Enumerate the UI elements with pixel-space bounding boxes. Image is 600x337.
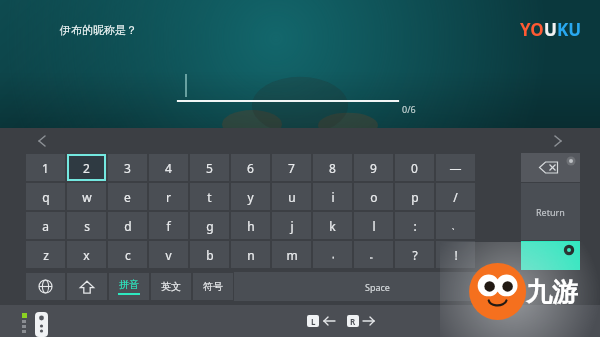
button[interactable]: z: [26, 241, 65, 268]
button[interactable]: 0: [395, 154, 434, 181]
staticText: r: [166, 189, 171, 205]
staticText: i: [331, 189, 335, 205]
staticText: p: [411, 189, 419, 205]
staticText: s: [84, 218, 90, 234]
button[interactable]: Confirm: [521, 241, 580, 270]
button[interactable]: e: [108, 183, 147, 210]
button[interactable]: a: [26, 212, 65, 239]
button[interactable]: Backspace: [521, 153, 580, 182]
button[interactable]: 英文: [151, 273, 191, 300]
staticText: t: [207, 189, 212, 205]
staticText: g: [206, 218, 214, 234]
staticText: o: [370, 189, 378, 205]
staticText: —: [449, 160, 462, 176]
staticText: 符号: [203, 280, 223, 293]
button[interactable]: 符号: [193, 273, 233, 300]
button[interactable]: 6: [231, 154, 270, 181]
button[interactable]: Next page: [548, 131, 568, 151]
staticText: KU: [557, 18, 582, 41]
button[interactable]: :: [395, 212, 434, 239]
staticText: y: [247, 189, 254, 205]
button[interactable]: o: [354, 183, 393, 210]
staticText: 5: [206, 160, 213, 176]
staticText: L: [311, 316, 316, 327]
button[interactable]: Space: [234, 272, 520, 301]
button[interactable]: !: [436, 241, 475, 268]
staticText: 0/6: [402, 103, 416, 115]
staticText: e: [124, 189, 131, 205]
button[interactable]: n: [231, 241, 270, 268]
button[interactable]: 。: [354, 241, 393, 268]
button[interactable]: x: [67, 241, 106, 268]
staticText: ，: [328, 248, 338, 261]
staticText: 6: [247, 160, 254, 176]
button[interactable]: 2: [67, 154, 106, 181]
staticText: 英文: [161, 280, 181, 293]
staticText: :: [413, 218, 417, 234]
staticText: 2: [83, 160, 90, 176]
button[interactable]: 拼音: [109, 273, 149, 300]
staticText: f: [166, 218, 171, 234]
staticText: 3: [124, 160, 131, 176]
button[interactable]: c: [108, 241, 147, 268]
button[interactable]: v: [149, 241, 188, 268]
button[interactable]: 、: [436, 212, 475, 239]
staticText: q: [42, 189, 50, 205]
button[interactable]: Key: [26, 273, 65, 300]
button[interactable]: 9: [354, 154, 393, 181]
button[interactable]: m: [272, 241, 311, 268]
staticText: /: [453, 189, 458, 205]
button[interactable]: b: [190, 241, 229, 268]
button[interactable]: r: [149, 183, 188, 210]
button[interactable]: u: [272, 183, 311, 210]
staticText: n: [247, 247, 255, 263]
button[interactable]: ，: [313, 241, 352, 268]
staticText: 伊布的昵称是？: [60, 23, 137, 37]
button[interactable]: p: [395, 183, 434, 210]
button[interactable]: g: [190, 212, 229, 239]
button[interactable]: j: [272, 212, 311, 239]
button[interactable]: —: [436, 154, 475, 181]
staticText: 。: [369, 248, 379, 261]
staticText: x: [83, 247, 90, 263]
button[interactable]: w: [67, 183, 106, 210]
staticText: 拼音: [119, 278, 139, 291]
staticText: h: [247, 218, 255, 234]
button[interactable]: i: [313, 183, 352, 210]
staticText: 9: [370, 160, 377, 176]
staticText: 九游: [526, 276, 578, 309]
staticText: U: [544, 18, 557, 41]
staticText: c: [125, 247, 131, 263]
staticText: !: [454, 247, 458, 263]
staticText: Return: [536, 206, 565, 218]
button[interactable]: y: [231, 183, 270, 210]
button[interactable]: 5: [190, 154, 229, 181]
staticText: w: [82, 189, 92, 205]
button[interactable]: 8: [313, 154, 352, 181]
button[interactable]: /: [436, 183, 475, 210]
button[interactable]: Key: [67, 273, 107, 300]
button[interactable]: ?: [395, 241, 434, 268]
button[interactable]: Return: [521, 183, 580, 240]
button[interactable]: d: [108, 212, 147, 239]
button[interactable]: s: [67, 212, 106, 239]
button[interactable]: 4: [149, 154, 188, 181]
staticText: ?: [412, 247, 418, 263]
button[interactable]: 7: [272, 154, 311, 181]
staticText: j: [290, 218, 294, 234]
button[interactable]: l: [354, 212, 393, 239]
button[interactable]: k: [313, 212, 352, 239]
button[interactable]: Previous page: [32, 131, 52, 151]
staticText: R: [350, 316, 356, 327]
staticText: YO: [520, 18, 544, 41]
button[interactable]: f: [149, 212, 188, 239]
button[interactable]: h: [231, 212, 270, 239]
button[interactable]: 3: [108, 154, 147, 181]
staticText: v: [165, 247, 172, 263]
button[interactable]: q: [26, 183, 65, 210]
button[interactable]: 1: [26, 154, 65, 181]
staticText: l: [372, 218, 376, 234]
staticText: a: [42, 218, 49, 234]
staticText: 1: [42, 160, 49, 176]
button[interactable]: t: [190, 183, 229, 210]
